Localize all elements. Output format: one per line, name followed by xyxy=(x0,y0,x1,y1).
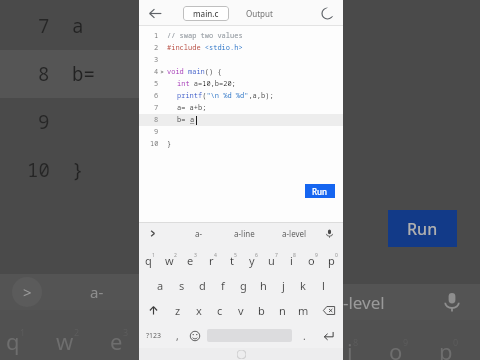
button[interactable]: z xyxy=(167,298,188,323)
button[interactable]: x xyxy=(188,298,209,323)
staticText: e xyxy=(110,326,123,356)
button[interactable]: Shift xyxy=(139,298,167,323)
button[interactable]: s xyxy=(171,273,192,298)
staticText: int a=10,b=20; xyxy=(177,79,236,89)
button[interactable]: v xyxy=(230,298,251,323)
button[interactable]: i xyxy=(283,248,303,273)
staticText: a- xyxy=(195,228,203,239)
staticText: i xyxy=(290,253,293,268)
button[interactable]: 6 xyxy=(139,90,343,102)
button[interactable]: Output xyxy=(238,6,281,21)
staticText: 3 xyxy=(154,55,159,65)
staticText: l xyxy=(322,278,325,293)
staticText: } xyxy=(167,139,172,149)
staticText: 1 xyxy=(154,31,159,41)
button[interactable]: 9 xyxy=(139,126,343,138)
staticText: 8 xyxy=(38,61,50,87)
button[interactable]: Voice input xyxy=(319,223,339,243)
staticText: 9 xyxy=(154,127,159,137)
staticText: b= xyxy=(72,61,95,87)
button[interactable]: 10 xyxy=(139,138,343,150)
button[interactable]: . xyxy=(295,323,313,348)
button[interactable]: c xyxy=(209,298,230,323)
staticText: -level xyxy=(343,291,385,314)
button[interactable]: 5 xyxy=(139,78,343,90)
staticText: o xyxy=(308,253,315,268)
staticText: t xyxy=(230,253,234,268)
button[interactable]: 1 xyxy=(139,30,343,42)
staticText: 3 xyxy=(194,252,197,259)
staticText: n xyxy=(279,303,286,318)
button[interactable]: k xyxy=(293,273,313,298)
button[interactable]: j xyxy=(273,273,293,298)
staticText: i xyxy=(347,336,353,360)
staticText: g xyxy=(240,278,247,293)
button[interactable]: r xyxy=(202,248,223,273)
staticText: , xyxy=(176,329,179,343)
button[interactable]: Run xyxy=(305,184,335,198)
button[interactable]: a- xyxy=(178,222,219,244)
staticText: printf("\n %d %d",a,b); xyxy=(177,91,274,101)
button[interactable]: ?123 xyxy=(139,323,168,348)
button[interactable]: g xyxy=(233,273,253,298)
button[interactable]: n xyxy=(272,298,293,323)
button[interactable]: y xyxy=(243,248,263,273)
button[interactable]: 3 xyxy=(139,54,343,66)
staticText: b xyxy=(258,303,265,318)
button[interactable]: 4 xyxy=(139,66,343,78)
staticText: 4 xyxy=(154,67,159,77)
staticText: a-line xyxy=(234,228,255,239)
button[interactable]: Enter xyxy=(313,323,343,348)
button[interactable]: Back xyxy=(145,3,165,23)
staticText: j xyxy=(282,278,285,293)
button[interactable]: Emoji xyxy=(186,323,204,348)
button[interactable]: a xyxy=(150,273,171,298)
button[interactable]: u xyxy=(263,248,283,273)
button[interactable]: 8 xyxy=(139,114,343,126)
button[interactable]: f xyxy=(213,273,233,298)
staticText: 0 xyxy=(335,252,338,259)
button[interactable]: a-line xyxy=(219,222,269,244)
button[interactable]: , xyxy=(168,323,186,348)
staticText: 9 xyxy=(38,109,50,135)
button[interactable]: h xyxy=(253,273,273,298)
button[interactable]: o xyxy=(303,248,323,273)
button[interactable]: More suggestions xyxy=(144,225,160,241)
button[interactable]: m xyxy=(293,298,314,323)
staticText: 8 xyxy=(154,115,159,125)
button[interactable]: q xyxy=(139,248,160,273)
button[interactable]: d xyxy=(192,273,213,298)
button[interactable]: Toggle dark mode xyxy=(317,3,337,23)
button[interactable]: main.c xyxy=(183,6,229,21)
staticText: c xyxy=(217,303,223,318)
staticText: v xyxy=(238,303,244,318)
staticText: #include <stdio.h> xyxy=(167,43,243,53)
staticText: a- xyxy=(90,282,104,302)
button[interactable]: l xyxy=(313,273,333,298)
staticText: p xyxy=(328,253,335,268)
staticText: 7 xyxy=(275,252,278,259)
button[interactable]: p xyxy=(323,248,343,273)
staticText: 5 xyxy=(234,252,237,259)
button[interactable]: Backspace xyxy=(314,298,343,323)
button[interactable]: b xyxy=(251,298,272,323)
button[interactable]: t xyxy=(223,248,243,273)
staticText: f xyxy=(221,278,225,293)
staticText: Run xyxy=(407,218,438,240)
button[interactable]: w xyxy=(160,248,181,273)
button[interactable]: 7 xyxy=(139,102,343,114)
button[interactable]: e xyxy=(181,248,202,273)
button[interactable]: 2 xyxy=(139,42,343,54)
staticText: 1 xyxy=(152,252,155,259)
staticText: } xyxy=(72,157,84,183)
button[interactable]: a-level xyxy=(269,222,319,244)
staticText: 8 xyxy=(293,252,296,259)
staticText: 2 xyxy=(154,43,159,53)
